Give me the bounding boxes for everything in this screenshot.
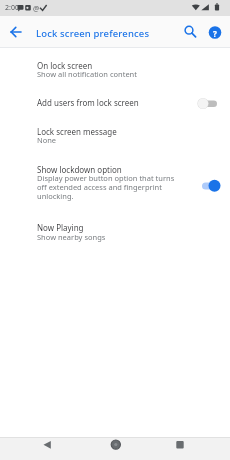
staticText: On lock screen <box>37 60 93 71</box>
staticText: Show nearby songs <box>37 232 106 242</box>
staticText: Add users from lock screen <box>37 97 139 108</box>
staticText: None <box>37 135 57 145</box>
staticText: Now Playing <box>37 222 84 233</box>
staticText: Lock screen preferences <box>36 27 150 40</box>
staticText: ? <box>213 28 217 39</box>
staticText: @ <box>33 4 40 14</box>
staticText: 2:00 <box>5 3 19 13</box>
staticText: Show lockdown option <box>37 164 122 175</box>
staticText: Show all notification content <box>37 69 137 79</box>
staticText: Display power button option that turns o… <box>37 173 175 201</box>
staticText: Lock screen message <box>37 126 117 137</box>
